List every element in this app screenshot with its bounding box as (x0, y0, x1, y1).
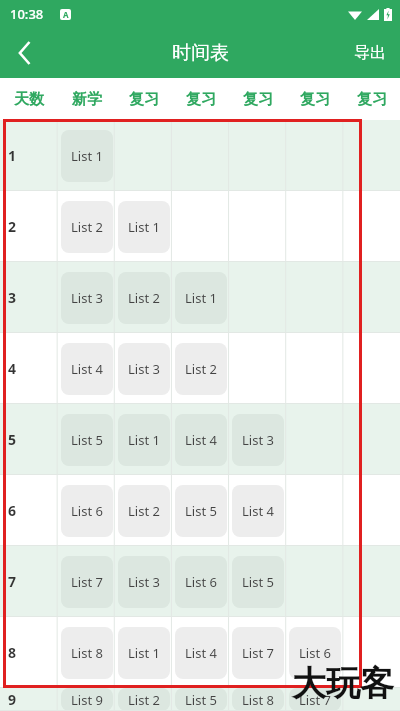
button[interactable]: List 5 (229, 546, 286, 617)
button[interactable] (229, 120, 286, 191)
button[interactable] (286, 333, 343, 404)
button[interactable]: 复习 (343, 78, 400, 120)
staticText: 新学 (72, 90, 102, 109)
button[interactable] (229, 191, 286, 262)
button[interactable]: 导出 (340, 28, 400, 78)
staticText: 2 (8, 217, 17, 236)
button[interactable]: List 1 (115, 404, 172, 475)
staticText: List 9 (71, 691, 103, 709)
staticText: List 2 (128, 289, 160, 307)
staticText: List 4 (71, 360, 103, 378)
staticText: 复习 (129, 90, 159, 109)
staticText: 7 (8, 572, 17, 591)
button[interactable] (286, 120, 343, 191)
button[interactable]: 复习 (115, 78, 172, 120)
staticText: A (63, 9, 69, 20)
button[interactable]: 9 (0, 688, 58, 711)
button[interactable]: List 7 (58, 546, 115, 617)
staticText: List 4 (185, 644, 217, 662)
staticText: List 3 (71, 289, 103, 307)
staticText: 导出 (354, 43, 386, 63)
button[interactable] (286, 191, 343, 262)
staticText: 复习 (300, 90, 330, 109)
button[interactable]: List 2 (115, 475, 172, 546)
button[interactable] (229, 333, 286, 404)
button[interactable]: List 7 (286, 688, 343, 711)
staticText: List 1 (128, 431, 160, 449)
button[interactable] (343, 546, 400, 617)
button[interactable]: List 2 (58, 191, 115, 262)
button[interactable]: List 6 (172, 546, 229, 617)
button[interactable]: List 6 (286, 617, 343, 688)
staticText: List 4 (242, 502, 274, 520)
button[interactable]: List 1 (115, 191, 172, 262)
staticText: 5 (8, 430, 17, 449)
button[interactable] (343, 617, 400, 688)
button[interactable]: 复习 (286, 78, 343, 120)
staticText: List 5 (242, 573, 274, 591)
button[interactable]: Back (0, 28, 50, 78)
button[interactable]: List 4 (229, 475, 286, 546)
button[interactable]: 7 (0, 546, 58, 617)
staticText: 大玩客 (292, 662, 394, 705)
button[interactable]: List 7 (229, 617, 286, 688)
button[interactable]: List 5 (58, 404, 115, 475)
button[interactable]: List 6 (58, 475, 115, 546)
staticText: 天数 (14, 90, 44, 109)
button[interactable] (115, 120, 172, 191)
staticText: List 8 (242, 691, 274, 709)
button[interactable]: List 2 (172, 333, 229, 404)
button[interactable]: List 3 (58, 262, 115, 333)
button[interactable]: 2 (0, 191, 58, 262)
staticText: 1 (8, 146, 17, 165)
staticText: 9 (8, 690, 17, 709)
staticText: List 1 (185, 289, 217, 307)
staticText: 8 (8, 643, 17, 662)
button[interactable] (343, 120, 400, 191)
button[interactable]: 新学 (58, 78, 115, 120)
staticText: List 7 (71, 573, 103, 591)
button[interactable]: List 4 (172, 404, 229, 475)
button[interactable] (343, 404, 400, 475)
button[interactable]: List 4 (58, 333, 115, 404)
button[interactable]: List 8 (229, 688, 286, 711)
staticText: 复习 (186, 90, 216, 109)
button[interactable]: List 3 (115, 333, 172, 404)
button[interactable]: 6 (0, 475, 58, 546)
button[interactable] (172, 120, 229, 191)
button[interactable]: List 1 (115, 617, 172, 688)
button[interactable]: List 9 (58, 688, 115, 711)
button[interactable]: 4 (0, 333, 58, 404)
button[interactable] (286, 475, 343, 546)
button[interactable] (172, 191, 229, 262)
button[interactable]: 复习 (172, 78, 229, 120)
button[interactable]: List 1 (172, 262, 229, 333)
button[interactable] (343, 191, 400, 262)
button[interactable]: 5 (0, 404, 58, 475)
button[interactable]: List 2 (115, 688, 172, 711)
button[interactable] (343, 688, 400, 711)
button[interactable] (343, 475, 400, 546)
staticText: List 1 (128, 644, 160, 662)
button[interactable]: 3 (0, 262, 58, 333)
button[interactable]: List 1 (58, 120, 115, 191)
staticText: 复习 (243, 90, 273, 109)
button[interactable]: List 3 (229, 404, 286, 475)
button[interactable]: 天数 (0, 78, 58, 120)
button[interactable] (343, 262, 400, 333)
button[interactable]: List 5 (172, 688, 229, 711)
button[interactable]: List 4 (172, 617, 229, 688)
button[interactable]: 8 (0, 617, 58, 688)
button[interactable] (343, 333, 400, 404)
button[interactable]: 复习 (229, 78, 286, 120)
button[interactable]: List 5 (172, 475, 229, 546)
button[interactable]: List 2 (115, 262, 172, 333)
button[interactable]: List 3 (115, 546, 172, 617)
staticText: List 3 (128, 573, 160, 591)
button[interactable]: 1 (0, 120, 58, 191)
button[interactable]: List 8 (58, 617, 115, 688)
